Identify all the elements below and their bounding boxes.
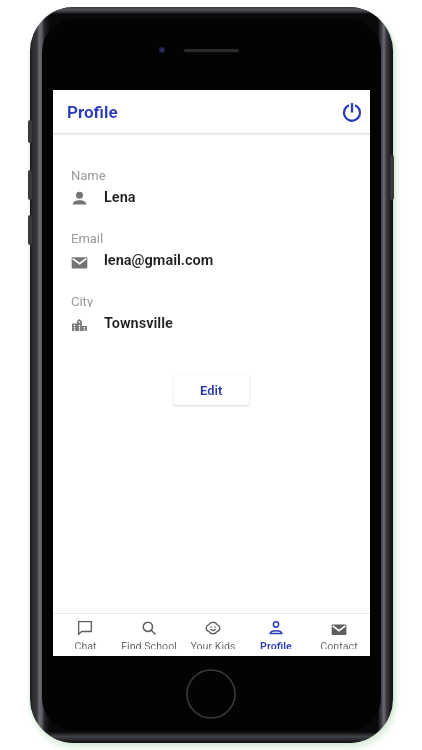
- staticText: Profile: [67, 102, 118, 122]
- staticText: Name: [71, 168, 106, 181]
- staticText: Contact: [320, 640, 358, 649]
- staticText: Your Kids: [190, 640, 236, 649]
- button[interactable]: Log out: [339, 99, 365, 125]
- staticText: Lena: [104, 189, 136, 206]
- button[interactable]: Contact: [307, 614, 370, 656]
- staticText: Profile: [260, 640, 292, 649]
- staticText: Chat: [74, 640, 97, 649]
- button[interactable]: Chat: [53, 614, 117, 656]
- staticText: lena@gmail.com: [104, 252, 214, 269]
- staticText: City: [71, 294, 94, 307]
- button[interactable]: Profile: [244, 614, 307, 656]
- button[interactable]: Edit: [174, 375, 249, 405]
- staticText: Find School: [121, 640, 177, 649]
- staticText: Edit: [200, 383, 223, 398]
- staticText: Townsville: [104, 315, 173, 332]
- button[interactable]: Your Kids: [181, 614, 244, 656]
- button[interactable]: Find School: [117, 614, 181, 656]
- staticText: Email: [71, 231, 104, 244]
